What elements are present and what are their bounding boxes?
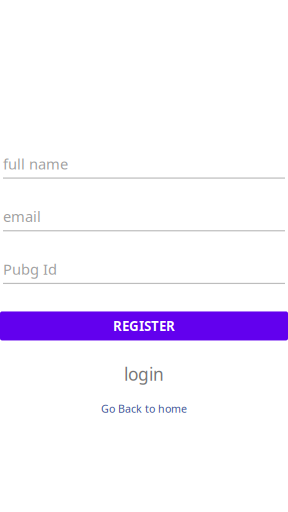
- button[interactable]: Pubg Id: [3, 259, 285, 284]
- staticText: email: [3, 207, 41, 226]
- staticText: login: [124, 362, 164, 385]
- staticText: REGISTER: [113, 317, 175, 335]
- button[interactable]: full name: [3, 154, 285, 179]
- button[interactable]: Go Back to home: [0, 401, 288, 416]
- staticText: Go Back to home: [101, 401, 187, 416]
- button[interactable]: email: [3, 207, 285, 231]
- staticText: full name: [3, 154, 68, 173]
- button[interactable]: REGISTER: [0, 311, 288, 340]
- staticText: Pubg Id: [3, 259, 57, 279]
- button[interactable]: login: [0, 362, 288, 385]
